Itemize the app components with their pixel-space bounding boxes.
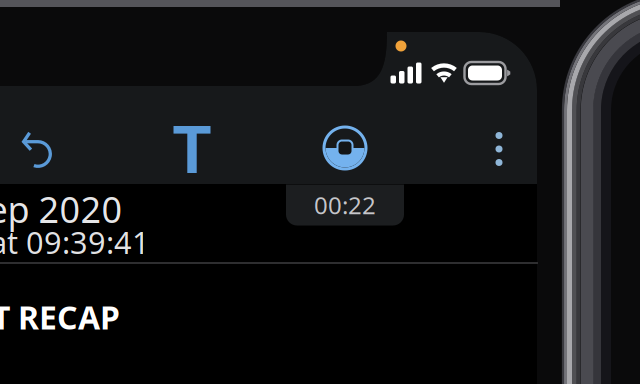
staticText: Sep 2020 <box>0 185 122 233</box>
staticText: T RECAP <box>0 296 120 338</box>
button[interactable]: Stop recording <box>324 127 366 169</box>
button[interactable]: Text style <box>173 126 210 173</box>
staticText: 00:22 <box>314 189 376 221</box>
button[interactable]: Undo <box>18 125 58 171</box>
button[interactable]: More options <box>489 132 509 166</box>
staticText: at 09:39:41 <box>0 222 150 262</box>
